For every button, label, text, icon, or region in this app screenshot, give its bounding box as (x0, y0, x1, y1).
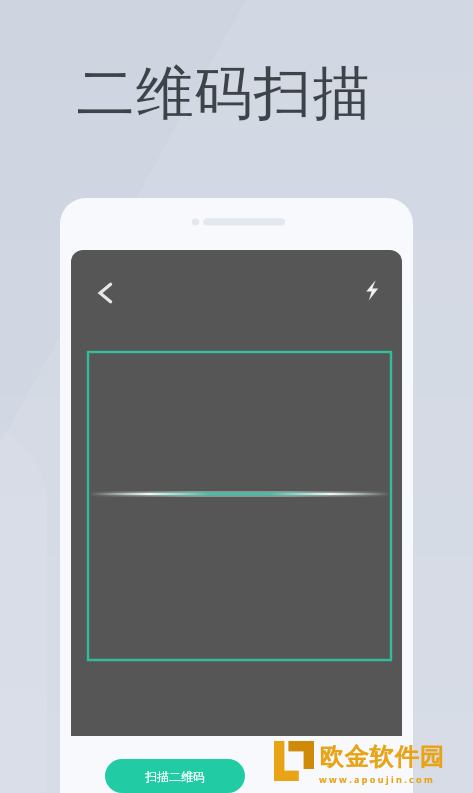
staticText: 扫描二维码 (145, 769, 205, 784)
button[interactable]: Back (83, 273, 123, 313)
staticText: 二维码扫描 (76, 57, 371, 130)
staticText: w w w . a p o u j i n . c o m (319, 773, 433, 785)
staticText: 欧金软件园 (319, 742, 444, 772)
button[interactable]: Flash (354, 272, 390, 308)
button[interactable]: 扫描二维码 (105, 759, 245, 793)
